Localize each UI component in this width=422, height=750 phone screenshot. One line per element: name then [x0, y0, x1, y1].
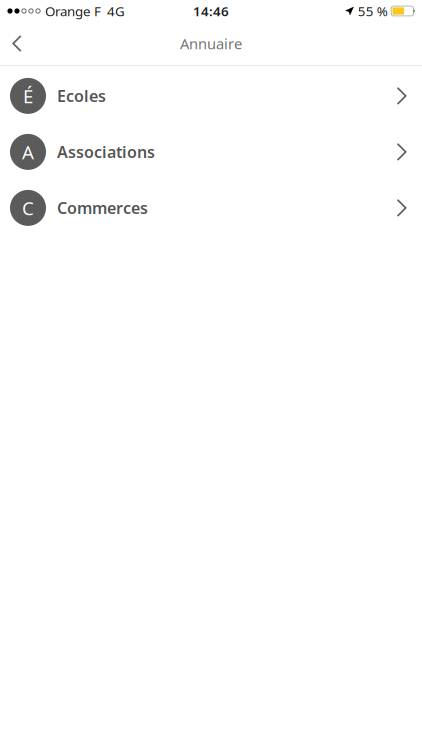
button[interactable]: A	[0, 124, 422, 180]
staticText: 55 %	[358, 2, 388, 20]
staticText: Annuaire	[180, 34, 242, 53]
staticText: Orange F	[45, 2, 101, 20]
staticText: 4G	[107, 2, 125, 20]
staticText: C	[22, 195, 34, 220]
staticText: É	[23, 83, 33, 108]
button[interactable]: Back	[0, 23, 34, 64]
button[interactable]: É	[0, 68, 422, 124]
staticText: Commerces	[57, 197, 148, 218]
staticText: 14:46	[193, 2, 229, 20]
staticText: Associations	[57, 141, 155, 162]
staticText: A	[22, 139, 34, 164]
button[interactable]: C	[0, 180, 422, 236]
staticText: Ecoles	[57, 85, 106, 106]
